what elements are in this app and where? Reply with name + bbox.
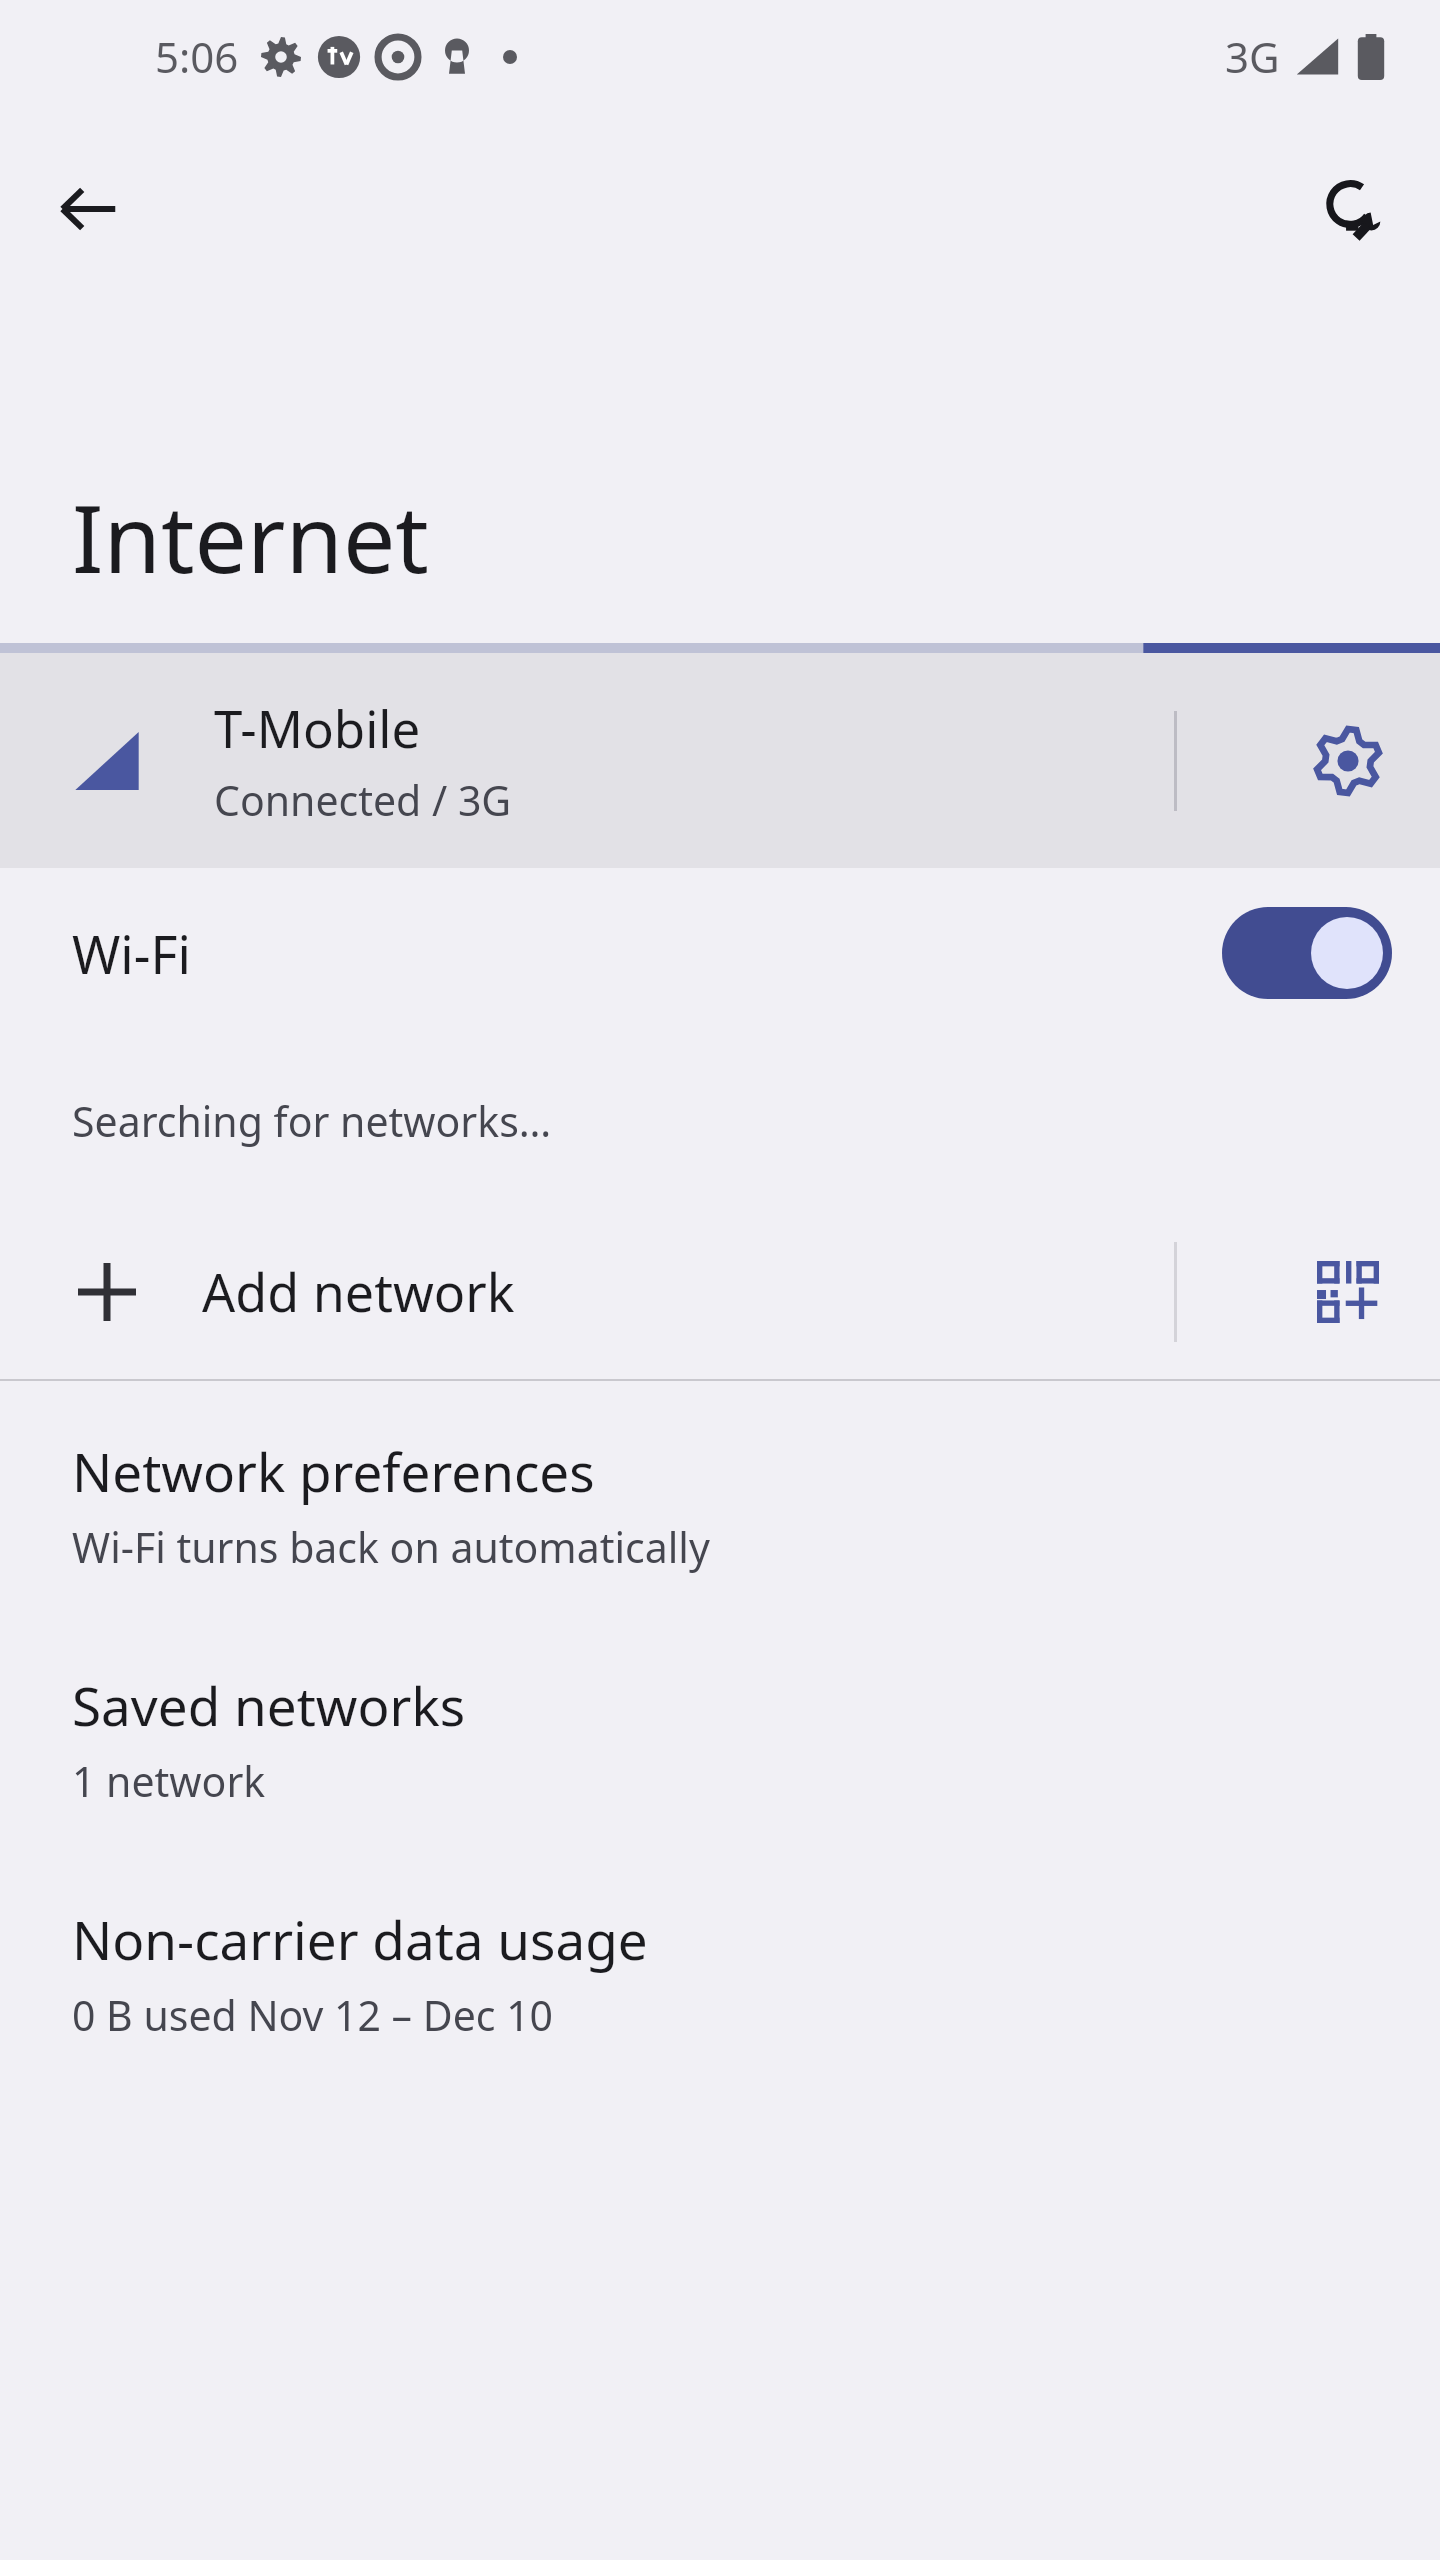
staticText: Non-carrier data usage: [72, 1903, 648, 1975]
button[interactable]: Wi-Fi on: [1222, 907, 1392, 999]
staticText: Wi-Fi: [72, 918, 191, 989]
staticText: 1 network: [72, 1753, 266, 1809]
button[interactable]: Carrier settings: [1278, 691, 1418, 831]
button[interactable]: Reset connectivity: [1298, 153, 1410, 265]
button[interactable]: Add network: [0, 1204, 1174, 1379]
button[interactable]: Saved networks: [0, 1653, 1440, 1825]
button[interactable]: Network preferences: [0, 1419, 1440, 1591]
staticText: Searching for networks…: [72, 1093, 552, 1149]
staticText: 3G: [1225, 28, 1280, 85]
button[interactable]: Back: [32, 153, 144, 265]
staticText: 5:06: [155, 28, 239, 85]
button[interactable]: Wi-Fi: [0, 868, 1440, 1038]
staticText: Internet: [72, 474, 429, 601]
staticText: 0 B used Nov 12 – Dec 10: [72, 1987, 554, 2043]
staticText: Wi-Fi turns back on automatically: [72, 1519, 710, 1575]
staticText: Add network: [202, 1256, 515, 1327]
staticText: T-Mobile: [214, 693, 421, 762]
staticText: Network preferences: [72, 1435, 595, 1507]
staticText: Connected / 3G: [214, 772, 512, 828]
button[interactable]: Non-carrier data usage: [0, 1887, 1440, 2059]
staticText: Saved networks: [72, 1669, 466, 1741]
button[interactable]: T-Mobile: [0, 653, 1174, 868]
button[interactable]: Scan QR code: [1278, 1222, 1418, 1362]
